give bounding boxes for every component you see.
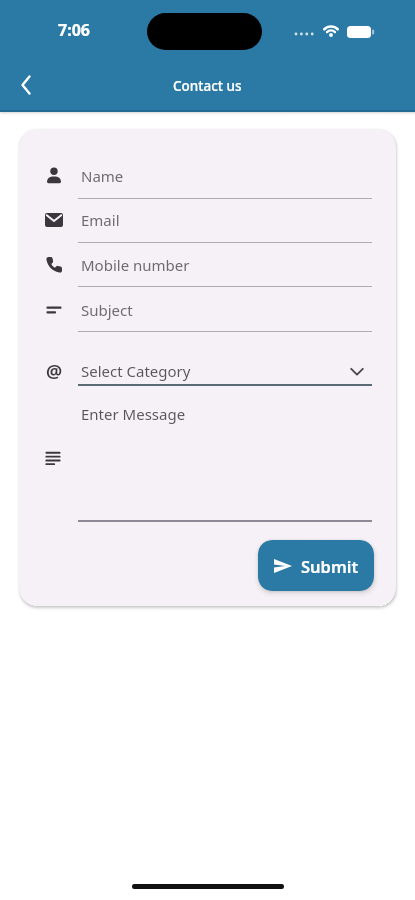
staticText: Submit (301, 555, 359, 577)
staticText: Name (81, 166, 124, 186)
button[interactable]: Submit (258, 540, 374, 591)
button[interactable] (7, 66, 45, 104)
staticText: 7:06 (58, 19, 90, 41)
staticText: Subject (81, 300, 133, 320)
button[interactable]: @ (39, 351, 379, 391)
staticText: Contact us (173, 77, 242, 95)
button[interactable]: Subject (39, 290, 379, 330)
staticText: Enter Message (81, 404, 186, 424)
button[interactable]: Name (39, 156, 379, 196)
button[interactable]: Email (39, 200, 379, 240)
staticText: Email (81, 210, 120, 230)
button[interactable]: Mobile number (39, 245, 379, 285)
button[interactable] (45, 451, 61, 465)
staticText: Select Category (81, 361, 191, 381)
staticText: Mobile number (81, 255, 190, 275)
staticText: @ (46, 359, 63, 383)
